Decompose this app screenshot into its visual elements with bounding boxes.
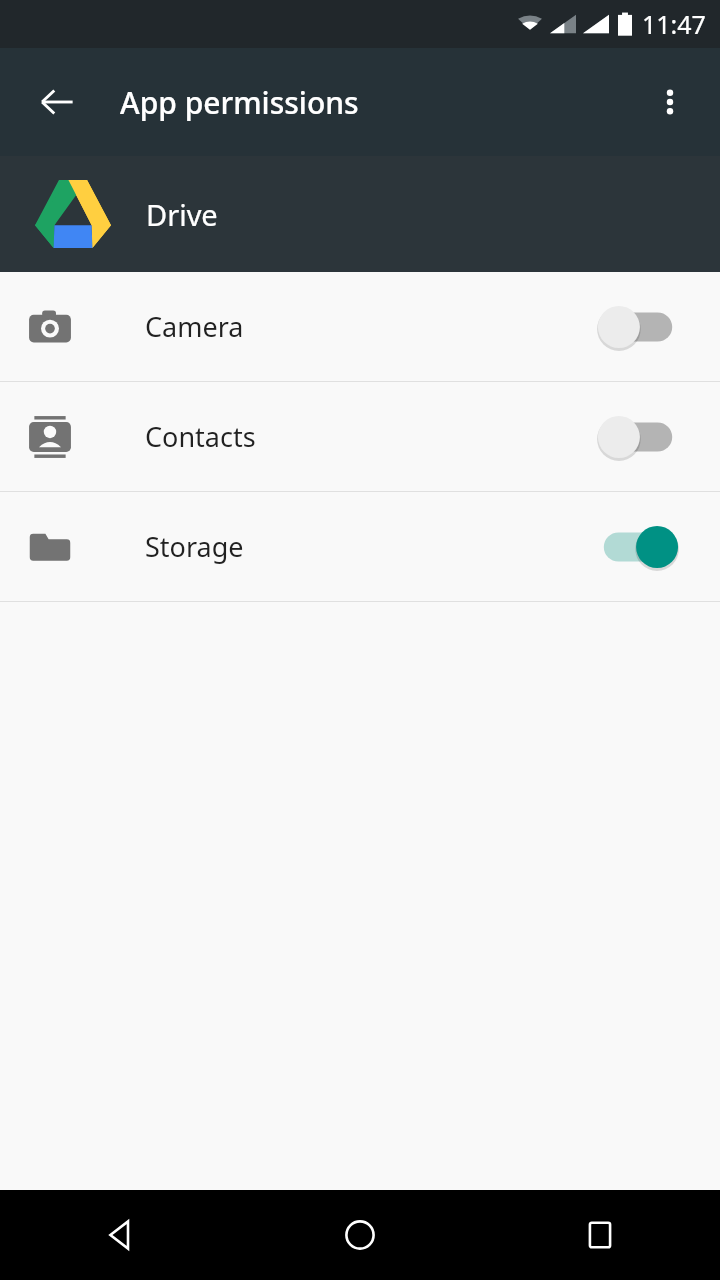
staticText: Drive	[146, 195, 218, 234]
button[interactable]: Off	[590, 295, 686, 359]
button[interactable]: Back	[0, 1190, 240, 1280]
button[interactable]: Home	[240, 1190, 480, 1280]
button[interactable]: Storage	[0, 492, 720, 601]
staticText: Contacts	[145, 418, 256, 455]
staticText: Camera	[145, 308, 244, 345]
button[interactable]: Contacts	[0, 382, 720, 491]
button[interactable]: Off	[590, 405, 686, 469]
staticText: App permissions	[120, 82, 359, 123]
button[interactable]: On	[590, 515, 686, 579]
button[interactable]: Recent apps	[480, 1190, 720, 1280]
button[interactable]: More options	[638, 70, 702, 134]
staticText: Storage	[145, 528, 244, 565]
button[interactable]: Drive	[0, 156, 720, 272]
button[interactable]: Back	[22, 67, 92, 137]
button[interactable]: Camera	[0, 272, 720, 381]
staticText: 11:47	[642, 7, 706, 41]
